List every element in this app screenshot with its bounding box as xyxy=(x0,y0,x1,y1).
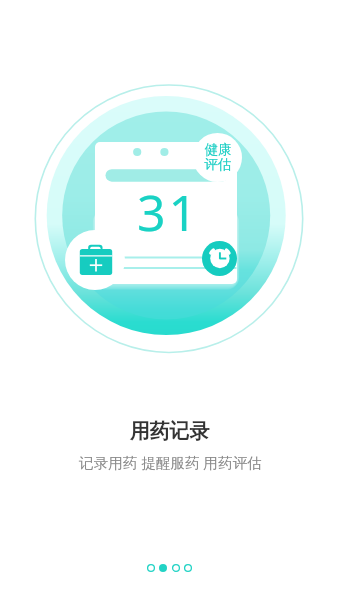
staticText: 健康 评估 xyxy=(204,141,232,174)
button[interactable]: 用药记录 xyxy=(65,230,125,290)
staticText: 用药记录 xyxy=(130,419,210,444)
staticText: 31 xyxy=(137,178,201,246)
button[interactable]: 健康评估 xyxy=(193,133,242,182)
button[interactable]: 提醒服药 xyxy=(202,241,237,276)
staticText: 记录用药 提醒服药 用药评估 xyxy=(79,452,262,472)
